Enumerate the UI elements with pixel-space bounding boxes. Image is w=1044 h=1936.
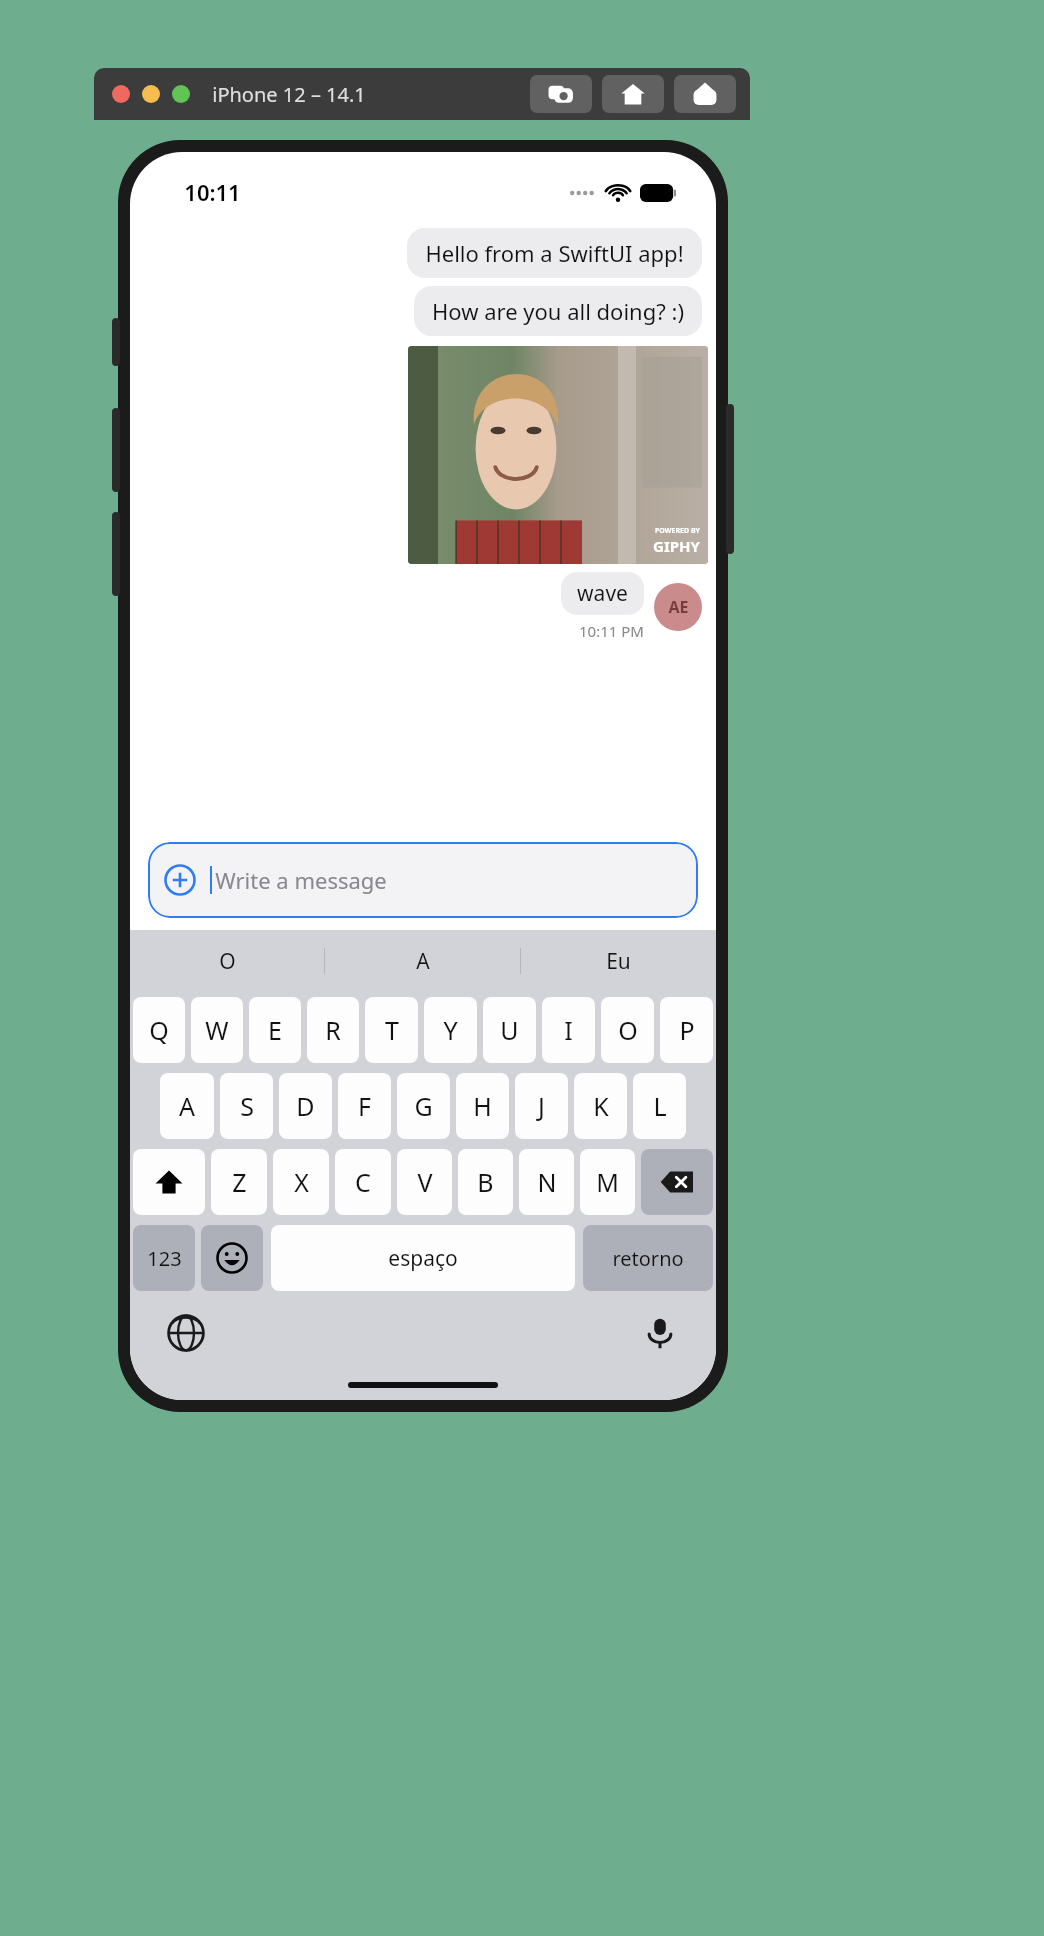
staticText: R bbox=[325, 1013, 341, 1047]
button[interactable]: AE bbox=[654, 583, 702, 631]
staticText: I bbox=[564, 1013, 573, 1047]
button[interactable]: Z bbox=[211, 1149, 267, 1215]
button[interactable]: Change language bbox=[164, 1311, 208, 1355]
button[interactable]: H bbox=[456, 1073, 509, 1139]
staticText: retorno bbox=[612, 1245, 684, 1272]
button[interactable]: Q bbox=[133, 997, 185, 1063]
staticText: 123 bbox=[147, 1245, 182, 1272]
button[interactable]: Shift bbox=[133, 1149, 205, 1215]
button[interactable]: U bbox=[483, 997, 536, 1063]
staticText: F bbox=[358, 1089, 371, 1123]
staticText: GIPHY bbox=[653, 536, 700, 556]
staticText: G bbox=[414, 1089, 433, 1123]
staticText: D bbox=[296, 1089, 315, 1123]
button[interactable]: Dictation bbox=[638, 1311, 682, 1355]
staticText: L bbox=[653, 1089, 667, 1123]
staticText: N bbox=[537, 1165, 557, 1199]
staticText: Q bbox=[149, 1013, 169, 1047]
staticText: Y bbox=[443, 1013, 458, 1047]
staticText: C bbox=[355, 1165, 371, 1199]
button[interactable]: Backspace bbox=[641, 1149, 713, 1215]
button[interactable]: Add attachment bbox=[148, 842, 698, 918]
button[interactable]: P bbox=[660, 997, 713, 1063]
staticText: POWERED BY bbox=[655, 526, 700, 536]
button[interactable]: Emoji bbox=[201, 1225, 263, 1291]
staticText: P bbox=[679, 1013, 695, 1047]
button[interactable]: Hello from a SwiftUI app! bbox=[407, 228, 702, 278]
button[interactable]: V bbox=[397, 1149, 452, 1215]
staticText: B bbox=[477, 1165, 494, 1199]
staticText: Z bbox=[232, 1165, 247, 1199]
button[interactable]: A bbox=[325, 930, 520, 992]
button[interactable]: C bbox=[335, 1149, 391, 1215]
button[interactable]: Y bbox=[424, 997, 477, 1063]
staticText: U bbox=[500, 1013, 519, 1047]
staticText: W bbox=[205, 1013, 229, 1047]
button[interactable]: I bbox=[542, 997, 595, 1063]
button[interactable]: How are you all doing? :) bbox=[414, 286, 702, 336]
button[interactable]: retorno bbox=[583, 1225, 713, 1291]
button[interactable]: Minimize bbox=[142, 85, 160, 103]
staticText: X bbox=[294, 1165, 309, 1199]
staticText: E bbox=[268, 1013, 282, 1047]
button[interactable]: L bbox=[633, 1073, 686, 1139]
button[interactable]: T bbox=[365, 997, 418, 1063]
staticText: 10:11 bbox=[184, 177, 241, 207]
button[interactable]: E bbox=[249, 997, 301, 1063]
staticText: S bbox=[240, 1089, 254, 1123]
button[interactable]: W bbox=[191, 997, 243, 1063]
button[interactable]: F bbox=[338, 1073, 391, 1139]
button[interactable]: S bbox=[220, 1073, 273, 1139]
button[interactable]: Share bbox=[674, 75, 736, 113]
button[interactable]: Close bbox=[112, 85, 130, 103]
staticText: A bbox=[179, 1089, 195, 1123]
button[interactable]: B bbox=[458, 1149, 513, 1215]
button[interactable]: O bbox=[130, 930, 324, 992]
staticText: espaço bbox=[388, 1244, 458, 1273]
button[interactable]: J bbox=[515, 1073, 568, 1139]
staticText: wave bbox=[577, 579, 628, 608]
button[interactable]: D bbox=[279, 1073, 332, 1139]
button[interactable]: Add attachment bbox=[164, 864, 196, 896]
button[interactable]: A bbox=[160, 1073, 214, 1139]
staticText: T bbox=[385, 1013, 399, 1047]
staticText: K bbox=[593, 1089, 609, 1123]
button[interactable]: POWERED BY bbox=[408, 346, 708, 564]
staticText: Hello from a SwiftUI app! bbox=[425, 238, 684, 268]
button[interactable]: G bbox=[397, 1073, 450, 1139]
staticText: H bbox=[473, 1089, 492, 1123]
staticText: iPhone 12 – 14.1 bbox=[212, 81, 366, 108]
button[interactable]: espaço bbox=[271, 1225, 575, 1291]
button[interactable]: Screenshot bbox=[530, 75, 592, 113]
staticText: M bbox=[596, 1165, 619, 1199]
staticText: How are you all doing? :) bbox=[432, 296, 684, 326]
staticText: V bbox=[417, 1165, 433, 1199]
button[interactable]: N bbox=[519, 1149, 574, 1215]
button[interactable]: K bbox=[574, 1073, 627, 1139]
staticText: 10:11 PM bbox=[579, 621, 644, 641]
button[interactable]: 123 bbox=[133, 1225, 195, 1291]
staticText: J bbox=[538, 1089, 545, 1123]
staticText: AE bbox=[668, 596, 689, 618]
button[interactable]: wave bbox=[561, 572, 644, 615]
staticText: Eu bbox=[606, 947, 631, 976]
staticText: Write a message bbox=[215, 865, 387, 895]
button[interactable]: M bbox=[580, 1149, 635, 1215]
button[interactable]: R bbox=[307, 997, 359, 1063]
button[interactable]: Home bbox=[602, 75, 664, 113]
button[interactable]: O bbox=[601, 997, 654, 1063]
staticText: O bbox=[219, 947, 236, 976]
button[interactable]: Zoom bbox=[172, 85, 190, 103]
staticText: A bbox=[416, 947, 430, 976]
button[interactable]: Eu bbox=[521, 930, 716, 992]
button[interactable]: X bbox=[273, 1149, 329, 1215]
staticText: O bbox=[618, 1013, 638, 1047]
